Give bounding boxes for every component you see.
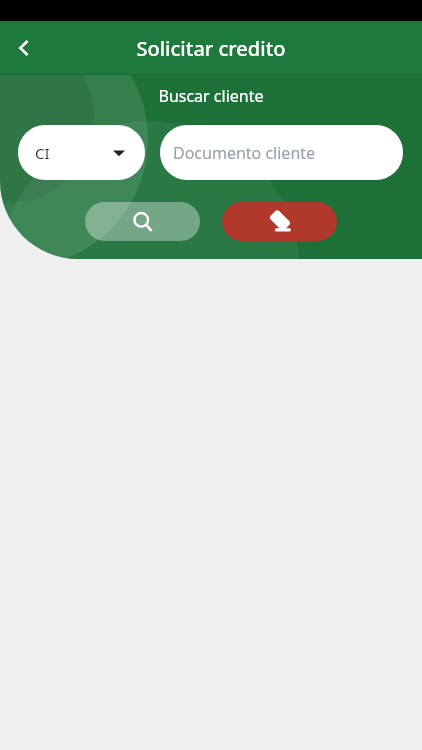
staticText: Solicitar credito bbox=[136, 35, 286, 62]
button[interactable]: Documento cliente bbox=[160, 125, 403, 180]
button[interactable]: Back bbox=[4, 28, 44, 68]
staticText: Documento cliente bbox=[173, 142, 316, 164]
staticText: CI bbox=[35, 143, 50, 163]
button[interactable]: Clear bbox=[222, 202, 337, 241]
button[interactable]: Search bbox=[85, 202, 200, 241]
staticText: Buscar cliente bbox=[158, 85, 264, 107]
button[interactable]: CI bbox=[18, 125, 145, 180]
